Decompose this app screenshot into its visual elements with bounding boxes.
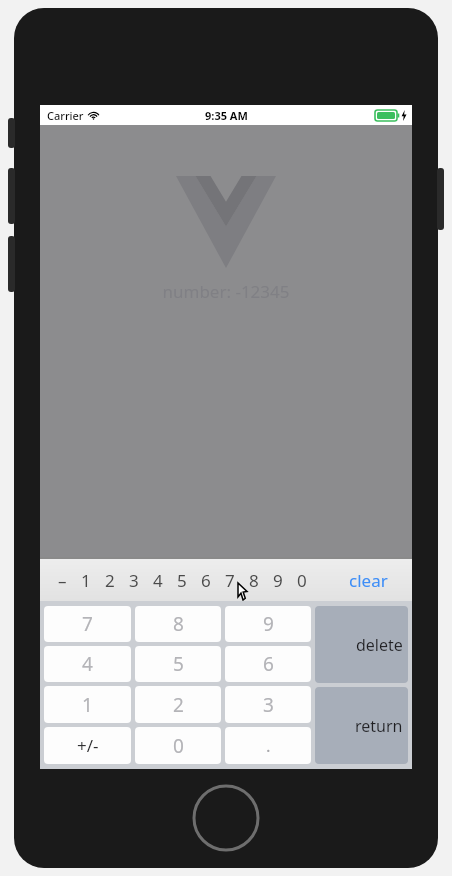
staticText: . <box>266 734 271 757</box>
staticText: 4 <box>153 569 163 592</box>
button[interactable]: – <box>50 559 74 601</box>
button[interactable]: 3 <box>122 559 146 601</box>
button[interactable]: 7 <box>44 606 131 642</box>
staticText: 5 <box>173 651 184 677</box>
staticText: Carrier <box>47 108 84 123</box>
staticText: 8 <box>249 569 259 592</box>
button[interactable]: 4 <box>44 646 131 682</box>
button[interactable]: +/- <box>44 727 131 764</box>
staticText: 9 <box>273 569 283 592</box>
button[interactable]: 4 <box>146 559 170 601</box>
staticText: 4 <box>82 651 93 677</box>
button[interactable]: 2 <box>98 559 122 601</box>
staticText: 6 <box>201 569 211 592</box>
staticText: +/- <box>77 734 99 757</box>
staticText: 5 <box>177 569 187 592</box>
button[interactable]: 8 <box>242 559 266 601</box>
button[interactable]: 2 <box>135 686 221 723</box>
button[interactable]: 6 <box>194 559 218 601</box>
staticText: – <box>58 569 67 592</box>
staticText: return <box>355 715 403 737</box>
staticText: 9 <box>263 611 274 637</box>
staticText: 0 <box>173 733 184 759</box>
button[interactable]: 1 <box>74 559 98 601</box>
button[interactable]: 1 <box>44 686 131 723</box>
staticText: 0 <box>297 569 307 592</box>
staticText: 2 <box>105 569 115 592</box>
button[interactable]: . <box>225 727 311 764</box>
staticText: delete <box>356 634 403 656</box>
staticText: 9:35 AM <box>205 108 248 123</box>
staticText: 8 <box>173 611 184 637</box>
staticText: 1 <box>82 692 93 718</box>
button[interactable]: 0 <box>135 727 221 764</box>
staticText: 7 <box>225 569 235 592</box>
staticText: 1 <box>81 569 91 592</box>
staticText: 3 <box>263 692 274 718</box>
button[interactable]: 9 <box>225 606 311 642</box>
button[interactable]: 9 <box>266 559 290 601</box>
staticText: 2 <box>173 692 184 718</box>
button[interactable]: delete <box>315 606 408 683</box>
button[interactable]: return <box>315 687 408 764</box>
button[interactable]: 3 <box>225 686 311 723</box>
staticText: clear <box>349 569 388 592</box>
button[interactable]: 5 <box>170 559 194 601</box>
button[interactable]: 6 <box>225 646 311 682</box>
button[interactable]: clear <box>343 563 394 598</box>
button[interactable]: 7 <box>218 559 242 601</box>
staticText: 7 <box>82 611 93 637</box>
button[interactable]: 0 <box>290 559 314 601</box>
staticText: 6 <box>263 651 274 677</box>
button[interactable]: 8 <box>135 606 221 642</box>
staticText: 3 <box>129 569 139 592</box>
staticText: number: -12345 <box>162 280 290 303</box>
button[interactable]: 5 <box>135 646 221 682</box>
